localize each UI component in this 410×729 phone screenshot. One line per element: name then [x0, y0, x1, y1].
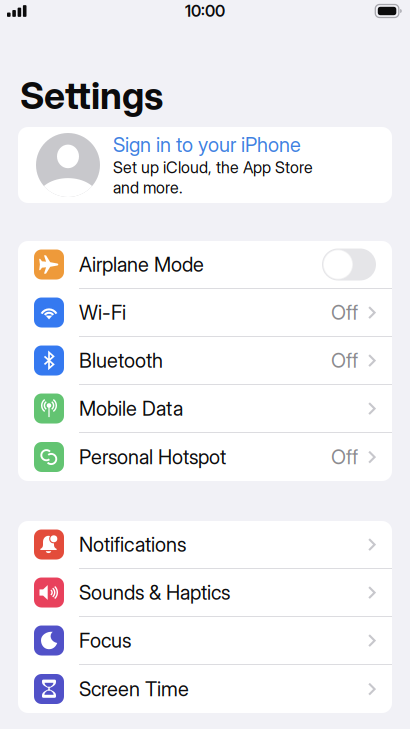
staticText: 10:00 — [185, 1, 225, 21]
staticText: Off — [331, 348, 358, 373]
button[interactable]: Screen Time — [18, 665, 392, 713]
staticText: Off — [331, 300, 358, 325]
staticText: Personal Hotspot — [79, 445, 226, 469]
staticText: Settings — [20, 73, 163, 118]
staticText: Focus — [79, 628, 131, 653]
staticText: Off — [331, 445, 358, 469]
staticText: Airplane Mode — [79, 252, 204, 277]
button[interactable]: Bluetooth — [18, 337, 392, 385]
staticText: Wi-Fi — [79, 300, 126, 325]
button[interactable]: Personal Hotspot — [18, 433, 392, 481]
button[interactable]: Sign in to your iPhone — [0, 127, 410, 203]
button[interactable]: Focus — [18, 617, 392, 665]
staticText: Sounds & Haptics — [79, 580, 230, 605]
button[interactable]: Notifications — [18, 521, 392, 569]
staticText: Sign in to your iPhone — [113, 132, 301, 157]
staticText: Mobile Data — [79, 396, 183, 421]
button[interactable]: Wi-Fi — [18, 289, 392, 337]
button[interactable]: Mobile Data — [18, 385, 392, 433]
staticText: Screen Time — [79, 677, 189, 701]
staticText: and more. — [113, 178, 183, 197]
staticText: Notifications — [79, 532, 186, 557]
staticText: Set up iCloud, the App Store — [113, 158, 313, 177]
button[interactable]: Airplane Mode — [18, 241, 392, 289]
button[interactable]: Sounds & Haptics — [18, 569, 392, 617]
staticText: Bluetooth — [79, 348, 163, 373]
